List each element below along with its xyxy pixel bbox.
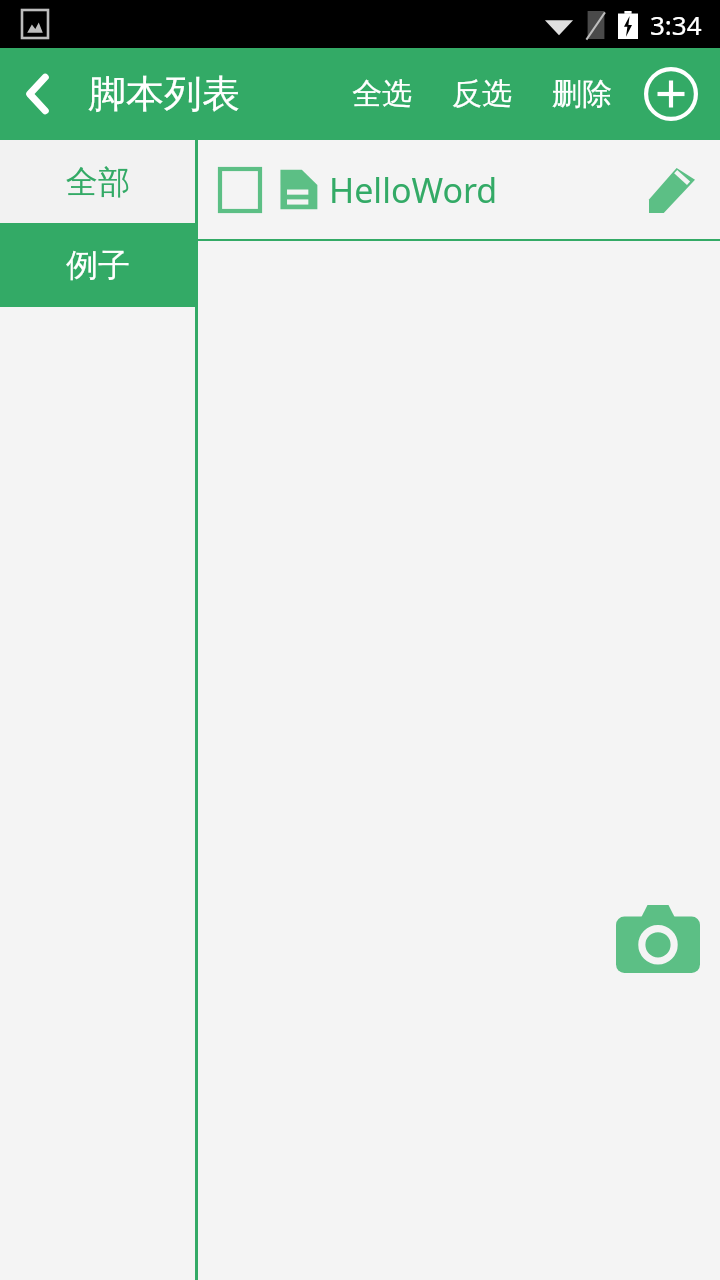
- button[interactable]: Select: [198, 140, 720, 239]
- button[interactable]: 全部: [0, 140, 195, 223]
- staticText: HelloWord: [329, 167, 498, 213]
- button[interactable]: 反选: [432, 48, 532, 140]
- staticText: 删除: [552, 75, 612, 113]
- button[interactable]: 删除: [532, 48, 632, 140]
- staticText: 脚本列表: [88, 70, 240, 118]
- button[interactable]: Back: [0, 48, 76, 140]
- staticText: 反选: [452, 75, 512, 113]
- staticText: 全部: [66, 162, 130, 202]
- button[interactable]: Add: [632, 55, 710, 133]
- button[interactable]: 全选: [332, 48, 432, 140]
- button[interactable]: 脚本列表: [88, 70, 240, 118]
- staticText: 3:34: [650, 7, 702, 42]
- staticText: 全选: [352, 75, 412, 113]
- button[interactable]: Select: [212, 162, 268, 218]
- button[interactable]: Edit: [632, 150, 712, 230]
- staticText: 例子: [66, 245, 130, 285]
- button[interactable]: 例子: [0, 223, 195, 307]
